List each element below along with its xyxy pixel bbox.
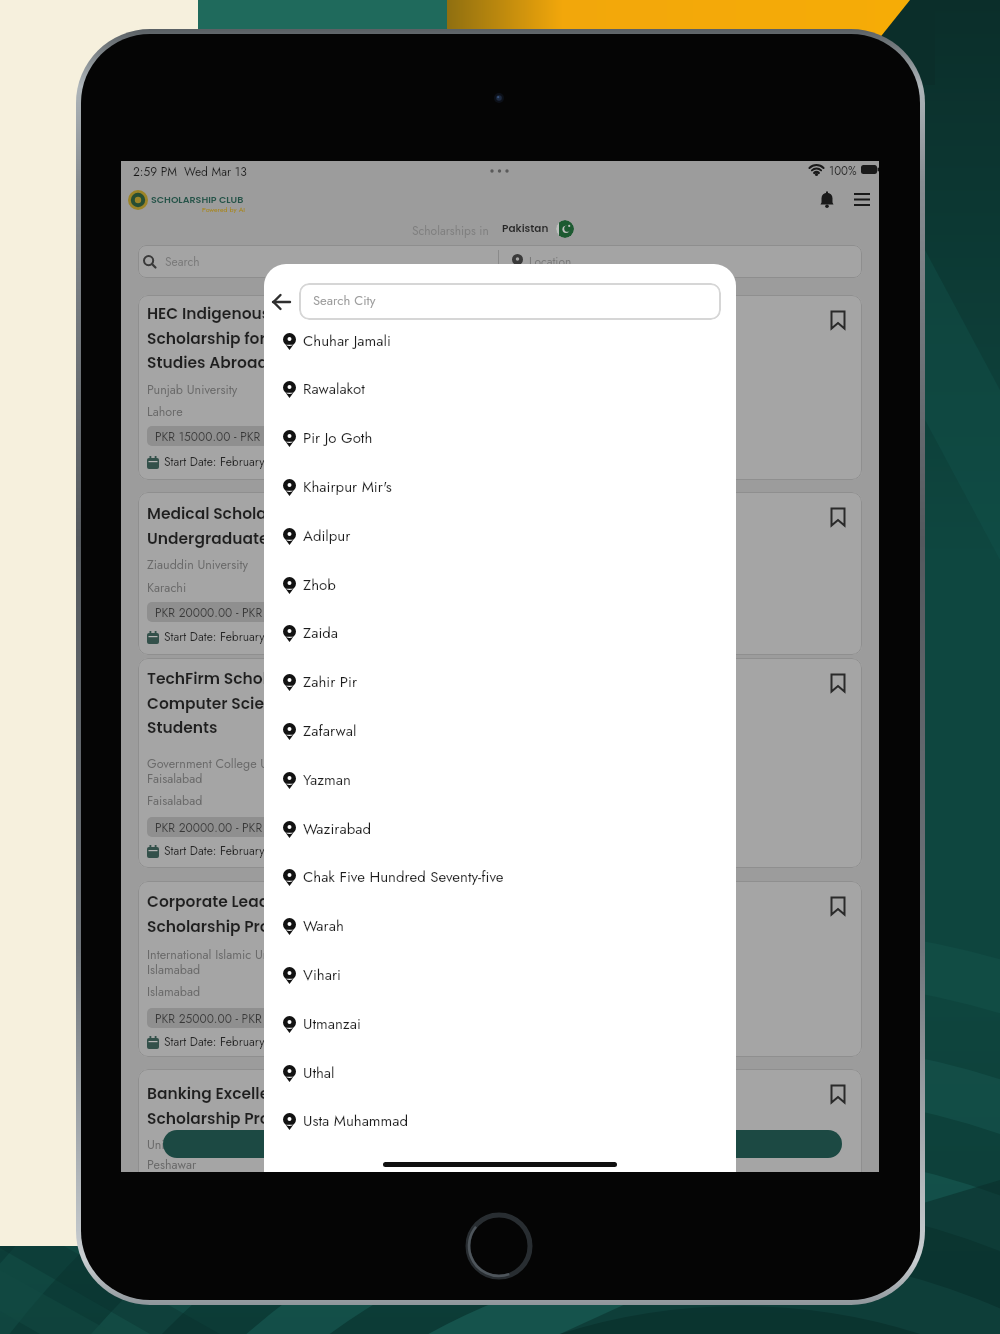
staticText: Start Date: February 27, 2024 (164, 842, 316, 859)
button[interactable]: Search City (299, 283, 721, 320)
staticText: Utmanzai (303, 1013, 361, 1035)
staticText: 100% (829, 163, 857, 180)
staticText: TechFirm Scholarship for Computer Scienc… (147, 668, 343, 738)
staticText: Yazman (303, 769, 351, 791)
staticText: Warah (303, 915, 344, 937)
button[interactable]: Chuhar Jamali (283, 317, 723, 365)
button[interactable] (830, 310, 846, 330)
button[interactable] (163, 1130, 842, 1158)
staticText: Scholarships in (412, 222, 489, 239)
button[interactable]: Search (138, 245, 862, 278)
button[interactable]: Vihari (283, 951, 723, 999)
staticText: PKR 20000.00 - PKR 100000.00 (155, 819, 326, 836)
button[interactable]: Pir Jo Goth (283, 414, 723, 462)
staticText: Banking Excellence Scholarship Program (147, 1083, 314, 1129)
staticText: Pakistan (502, 221, 549, 236)
staticText: Start Date: February 25, 2024 (164, 628, 317, 645)
staticText: Powered by AI (202, 205, 245, 215)
staticText: Wed Mar 13 (184, 163, 247, 180)
button[interactable] (272, 293, 291, 311)
staticText: Medical Scholarship for Undergraduates (147, 503, 332, 549)
staticText: Adilpur (303, 525, 351, 547)
button[interactable]: Zahir Pir (283, 658, 723, 706)
button[interactable]: Chak Five Hundred Seventy-five (283, 853, 723, 901)
button[interactable]: Warah (283, 902, 723, 950)
button[interactable]: HEC Indigenous Scholarship for Studies A… (138, 295, 862, 480)
staticText: Government College University, Faisalaba… (147, 755, 314, 788)
staticText: Punjab University (147, 381, 238, 399)
staticText: Peshawar (147, 1156, 197, 1172)
staticText: Zahir Pir (303, 671, 358, 693)
button[interactable] (830, 507, 846, 527)
button[interactable] (830, 673, 846, 693)
staticText: Khairpur Mir's (303, 476, 392, 498)
staticText: Rawalakot (303, 378, 365, 400)
staticText: Zafarwal (303, 720, 357, 742)
staticText: PKR 15000.00 - PKR 75000.00 (155, 428, 317, 445)
staticText: HEC Indigenous Scholarship for Studies A… (147, 303, 271, 373)
button[interactable]: Medical Scholarship for Undergraduates (138, 492, 862, 655)
button[interactable]: Wazirabad (283, 805, 723, 853)
button[interactable]: Zaida (283, 609, 723, 657)
staticText: Faisalabad (147, 792, 203, 810)
staticText: PKR 20000.00 - PKR 70000.00 (155, 604, 319, 621)
button[interactable]: Rawalakot (283, 365, 723, 413)
staticText: Start Date: February 28, 2024 (164, 1033, 317, 1050)
staticText: Zhob (303, 574, 336, 596)
staticText: SCHOLARSHIP CLUB (151, 193, 244, 206)
staticText: Search City (313, 291, 376, 310)
staticText: Lahore (147, 403, 183, 421)
button[interactable]: Banking Excellence Scholarship Program (138, 1069, 862, 1172)
staticText: Karachi (147, 579, 187, 597)
staticText: Corporate Leadership Scholarship Program (147, 891, 319, 937)
button[interactable] (830, 1084, 846, 1104)
staticText: Ziauddin University (147, 556, 248, 574)
button[interactable]: Khairpur Mir's (283, 463, 723, 511)
staticText: Pir Jo Goth (303, 427, 373, 449)
button[interactable]: Yazman (283, 756, 723, 804)
staticText: Chak Five Hundred Seventy-five (303, 866, 504, 888)
staticText: Uthal (303, 1062, 335, 1084)
staticText: International Islamic University, Islama… (147, 946, 309, 979)
staticText: Islamabad (147, 983, 201, 1001)
button[interactable]: Usta Muhammad (283, 1097, 723, 1145)
button[interactable] (854, 193, 870, 207)
button[interactable]: TechFirm Scholarship for Computer Scienc… (138, 658, 862, 868)
button[interactable]: Zafarwal (283, 707, 723, 755)
staticText: Usta Muhammad (303, 1110, 409, 1132)
button[interactable]: Corporate Leadership Scholarship Program (138, 881, 862, 1057)
staticText: Wazirabad (303, 818, 372, 840)
staticText: University of Peshawar (147, 1136, 265, 1154)
button[interactable] (830, 896, 846, 916)
staticText: Zaida (303, 622, 339, 644)
button[interactable]: Zhob (283, 561, 723, 609)
button[interactable]: Uthal (283, 1049, 723, 1097)
staticText: Location (529, 253, 572, 270)
staticText: 2:59 PM (133, 163, 178, 180)
staticText: Vihari (303, 964, 341, 986)
button[interactable] (818, 191, 836, 209)
staticText: Start Date: February 20, 2024 (164, 453, 318, 470)
button[interactable]: Adilpur (283, 512, 723, 560)
staticText: Chuhar Jamali (303, 330, 391, 352)
staticText: Search (165, 253, 200, 270)
staticText: PKR 25000.00 - PKR 75000.00 (155, 1010, 318, 1027)
button[interactable]: Utmanzai (283, 1000, 723, 1048)
